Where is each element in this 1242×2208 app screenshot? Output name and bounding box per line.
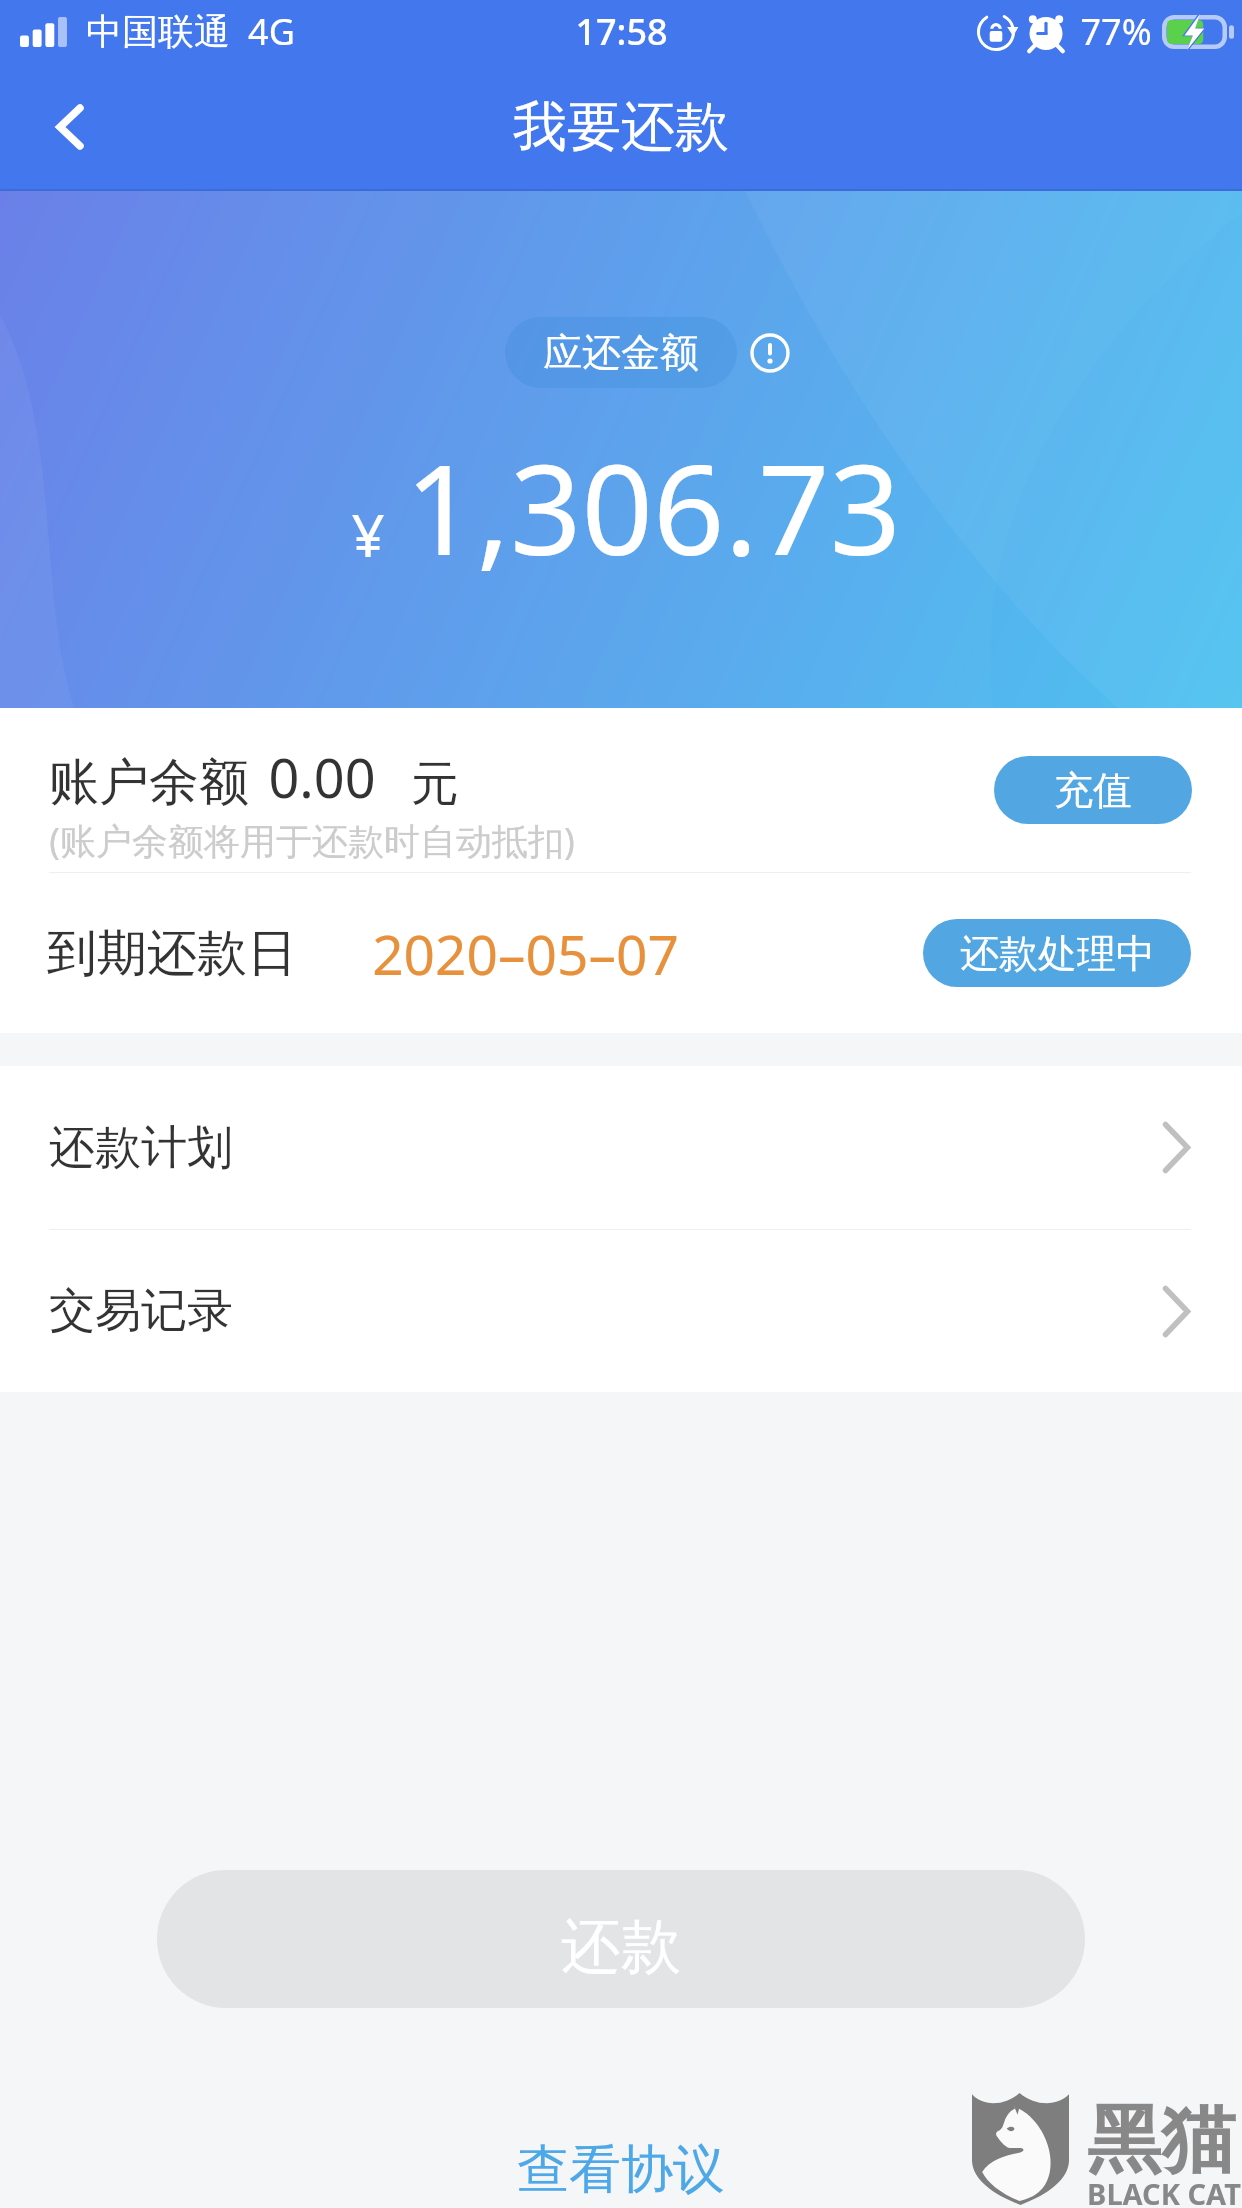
- button[interactable]: 充值: [994, 756, 1192, 824]
- other: Battery 77 percent charging: [1162, 15, 1234, 49]
- staticText: (账户余额将用于还款时自动抵扣): [49, 816, 575, 865]
- staticText: 中国联通: [86, 9, 230, 54]
- staticText: 还款处理中: [960, 929, 1155, 978]
- staticText: 77%: [1080, 7, 1152, 56]
- staticText: 1,306.73: [405, 421, 901, 591]
- staticText: 查看协议: [517, 2137, 725, 2203]
- button[interactable]: 还款计划: [0, 1066, 1242, 1229]
- other: Alarm: [1026, 12, 1066, 52]
- button[interactable]: 还款: [157, 1870, 1085, 2008]
- staticText: 到期还款日: [47, 922, 297, 985]
- staticText: 元: [411, 754, 459, 814]
- button[interactable]: 应还金额: [505, 317, 737, 388]
- staticText: ¥: [351, 495, 385, 574]
- staticText: 交易记录: [49, 1282, 233, 1340]
- staticText: 还款计划: [49, 1119, 233, 1177]
- button[interactable]: 交易记录: [0, 1230, 1242, 1392]
- button[interactable]: Back: [0, 62, 140, 191]
- staticText: 黑猫: [1087, 2094, 1235, 2187]
- staticText: 17:58: [575, 7, 668, 56]
- staticText: 应还金额: [543, 328, 699, 377]
- staticText: 2020–05–07: [372, 916, 679, 991]
- button[interactable]: 查看协议: [493, 2127, 749, 2208]
- staticText: 4G: [248, 7, 295, 56]
- staticText: BLACK CAT: [1087, 2174, 1241, 2208]
- button[interactable]: 还款处理中: [923, 919, 1191, 987]
- other: Rotation lock: [976, 12, 1016, 52]
- button[interactable]: Info: [746, 329, 794, 377]
- staticText: 还款: [561, 1909, 681, 1985]
- staticText: 账户余额: [49, 751, 249, 814]
- staticText: 0.00: [268, 740, 376, 814]
- staticText: 我要还款: [513, 93, 729, 161]
- staticText: 充值: [1054, 766, 1132, 815]
